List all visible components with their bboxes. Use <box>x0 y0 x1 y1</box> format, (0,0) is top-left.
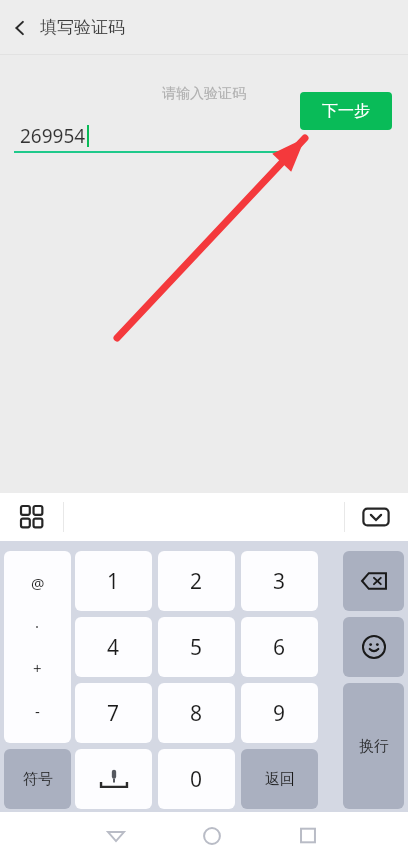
staticText: 5 <box>190 633 203 662</box>
staticText: 6 <box>273 633 286 662</box>
staticText: · <box>35 616 40 636</box>
button[interactable]: Emoji <box>343 617 404 677</box>
staticText: 2 <box>190 567 203 596</box>
button[interactable]: 2 <box>158 551 235 611</box>
button[interactable]: 5 <box>158 617 235 677</box>
button[interactable]: Back <box>92 812 140 859</box>
button[interactable]: 换行 <box>343 683 404 809</box>
button[interactable]: 8 <box>158 683 235 743</box>
button[interactable]: 269954 <box>14 117 292 153</box>
button[interactable]: Back <box>0 0 40 55</box>
staticText: @ <box>31 573 45 593</box>
button[interactable]: Backspace <box>343 551 404 611</box>
staticText: 1 <box>107 567 120 596</box>
button[interactable]: 返回 <box>241 749 318 809</box>
button[interactable]: 9 <box>241 683 318 743</box>
button[interactable]: Home <box>188 812 236 859</box>
button[interactable]: Symbols column <box>4 551 71 743</box>
staticText: - <box>35 701 40 721</box>
button[interactable]: 0 <box>158 749 235 809</box>
button[interactable]: 下一步 <box>300 92 392 130</box>
staticText: 返回 <box>265 770 295 789</box>
staticText: 4 <box>107 633 120 662</box>
button[interactable]: 3 <box>241 551 318 611</box>
button[interactable]: 1 <box>75 551 152 611</box>
staticText: 3 <box>273 567 286 596</box>
staticText: 8 <box>190 699 203 728</box>
button[interactable]: Voice input <box>75 749 152 809</box>
staticText: 269954 <box>20 123 86 149</box>
staticText: 7 <box>107 699 120 728</box>
staticText: 下一步 <box>322 101 370 121</box>
button[interactable]: 4 <box>75 617 152 677</box>
button[interactable]: 符号 <box>4 749 71 809</box>
staticText: 符号 <box>23 770 53 789</box>
button[interactable]: 6 <box>241 617 318 677</box>
button[interactable]: Recent apps <box>284 812 332 859</box>
staticText: + <box>33 658 42 678</box>
staticText: 请输入验证码 <box>162 85 246 103</box>
staticText: 9 <box>273 699 286 728</box>
staticText: 换行 <box>359 737 389 756</box>
button[interactable]: Hide keyboard <box>352 493 400 541</box>
staticText: 0 <box>190 765 203 794</box>
button[interactable]: Keyboard layouts <box>8 493 56 541</box>
staticText: 填写验证码 <box>40 17 125 38</box>
button[interactable]: 7 <box>75 683 152 743</box>
